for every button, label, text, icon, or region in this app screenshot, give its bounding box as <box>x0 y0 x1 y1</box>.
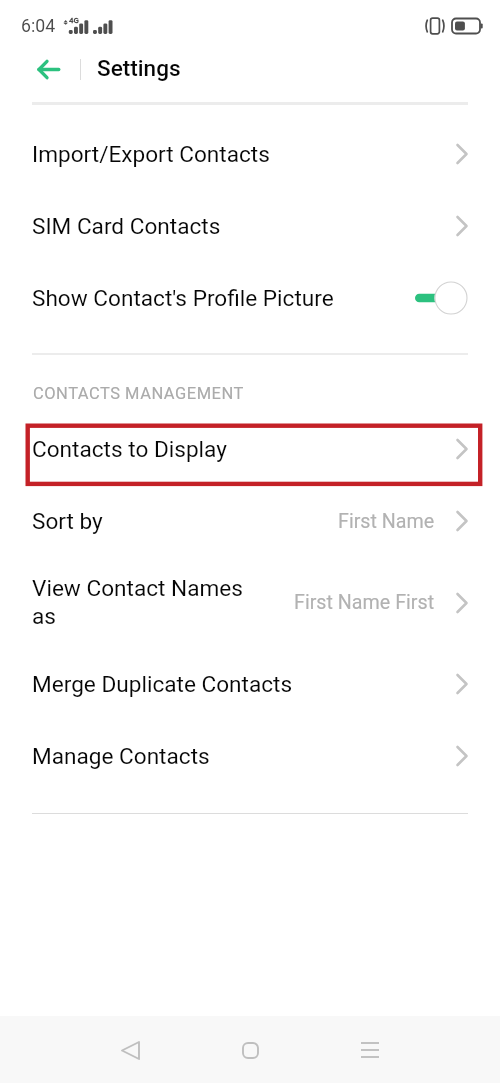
staticText: Import/Export Contacts <box>32 141 270 167</box>
staticText: Settings <box>97 55 181 81</box>
button[interactable]: SIM Card Contacts <box>0 190 500 262</box>
staticText: Contacts to Display <box>32 436 449 462</box>
staticText: SIM Card Contacts <box>32 213 221 239</box>
staticText: First Name First <box>294 591 435 614</box>
button[interactable]: Contacts to Display <box>0 413 500 485</box>
button[interactable]: Sort by <box>0 485 500 557</box>
staticText: 4G <box>69 16 79 25</box>
staticText: Manage Contacts <box>32 743 210 769</box>
button[interactable]: Import/Export Contacts <box>0 118 500 190</box>
other: Show Contact's Profile Picture toggle <box>415 280 468 316</box>
staticText: First Name <box>338 510 435 533</box>
staticText: View Contact Names as <box>32 575 248 630</box>
button[interactable]: Merge Duplicate Contacts <box>0 648 500 720</box>
staticText: 6:04 <box>21 16 56 37</box>
staticText: Sort by <box>32 508 103 534</box>
other: Vibrate <box>421 15 447 37</box>
button[interactable]: Back <box>24 45 72 93</box>
button[interactable]: Recent apps <box>344 1024 396 1076</box>
staticText: Show Contact's Profile Picture <box>32 285 420 311</box>
button[interactable]: Show Contact's Profile Picture <box>0 262 500 334</box>
button[interactable]: Back <box>104 1024 156 1076</box>
staticText: Merge Duplicate Contacts <box>32 671 293 697</box>
button[interactable]: View Contact Names as <box>0 557 500 648</box>
button[interactable]: Manage Contacts <box>0 720 500 792</box>
button[interactable]: Home <box>224 1024 276 1076</box>
staticText: CONTACTS MANAGEMENT <box>33 384 244 403</box>
other: Battery <box>452 16 484 36</box>
